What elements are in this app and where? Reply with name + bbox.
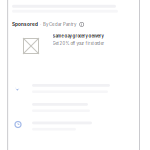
staticText: ·	[38, 22, 43, 27]
image	[23, 38, 39, 54]
staticText: Same day grocery delivery	[52, 34, 103, 38]
button[interactable]: Sponsored	[0, 21, 127, 28]
button[interactable]: Nearby place	[11, 83, 131, 100]
staticText: Sponsored	[12, 22, 38, 27]
button[interactable]: Same day grocery delivery	[0, 30, 127, 62]
staticText: By Cedar Pantry	[43, 22, 76, 27]
button[interactable]: Recent search	[11, 120, 131, 137]
staticText: Get 20% off your first order	[52, 41, 104, 46]
button[interactable]: Suggestion	[11, 102, 131, 119]
